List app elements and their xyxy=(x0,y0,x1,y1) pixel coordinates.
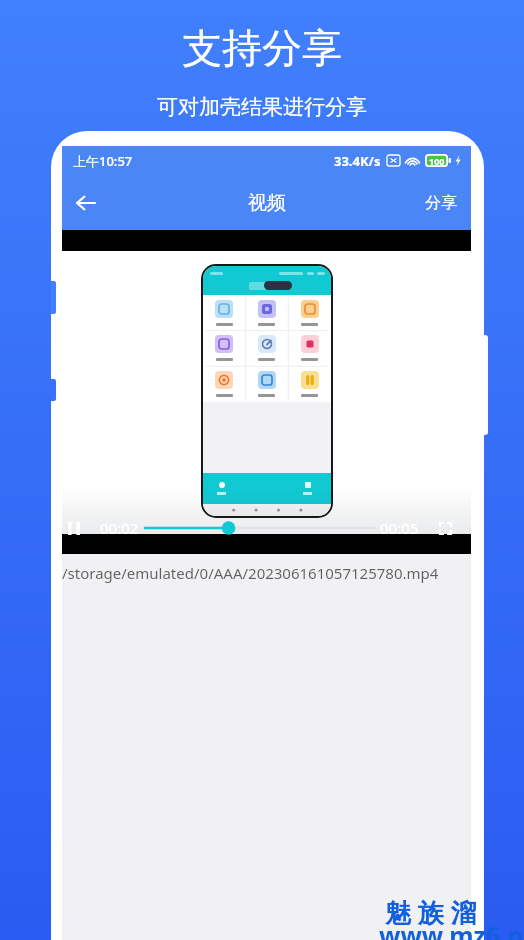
button[interactable] xyxy=(245,330,288,366)
button[interactable] xyxy=(217,482,226,495)
staticText: 分享 xyxy=(425,193,457,213)
button[interactable] xyxy=(203,295,245,330)
button[interactable]: Pause xyxy=(64,518,84,538)
staticText: /storage/emulated/0/AAA/2023061610571257… xyxy=(62,563,439,583)
staticText: 00:02 xyxy=(100,518,139,538)
staticText: 00:05 xyxy=(380,518,419,538)
button[interactable]: 分享 xyxy=(411,181,471,225)
staticText: 上午10:57 xyxy=(73,152,133,170)
button[interactable] xyxy=(303,482,312,495)
staticText: 支持分享 xyxy=(182,23,342,73)
staticText: 100 xyxy=(429,155,445,167)
button[interactable]: Fullscreen xyxy=(435,518,455,538)
button[interactable] xyxy=(203,330,245,366)
button[interactable] xyxy=(245,366,288,402)
button[interactable] xyxy=(288,366,331,402)
button[interactable] xyxy=(288,295,331,330)
button[interactable]: Back xyxy=(64,181,108,225)
button[interactable] xyxy=(203,366,245,402)
staticText: www.mz6.net xyxy=(379,918,524,940)
staticText: 魅 族 溜 xyxy=(385,894,477,930)
staticText: 可对加壳结果进行分享 xyxy=(157,94,367,120)
button[interactable] xyxy=(245,295,288,330)
button[interactable] xyxy=(288,330,331,366)
staticText: 视频 xyxy=(248,191,286,215)
staticText: 33.4K/s xyxy=(334,152,381,170)
